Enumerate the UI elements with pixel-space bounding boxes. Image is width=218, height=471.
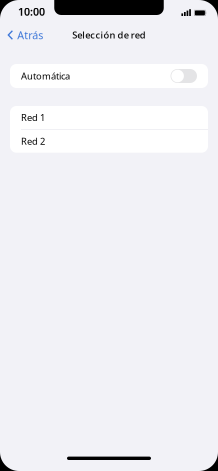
button[interactable]: Automática bbox=[10, 64, 208, 88]
staticText: Red 2 bbox=[21, 135, 45, 147]
staticText: 10:00 bbox=[18, 4, 45, 19]
button[interactable]: Atrás bbox=[0, 23, 43, 47]
button[interactable]: Red 2 bbox=[10, 130, 208, 153]
staticText: Selección de red bbox=[72, 29, 146, 41]
staticText: Red 1 bbox=[21, 111, 45, 124]
staticText: Automática bbox=[21, 70, 70, 82]
button[interactable]: Red 1 bbox=[10, 106, 208, 129]
staticText: Atrás bbox=[17, 28, 43, 42]
